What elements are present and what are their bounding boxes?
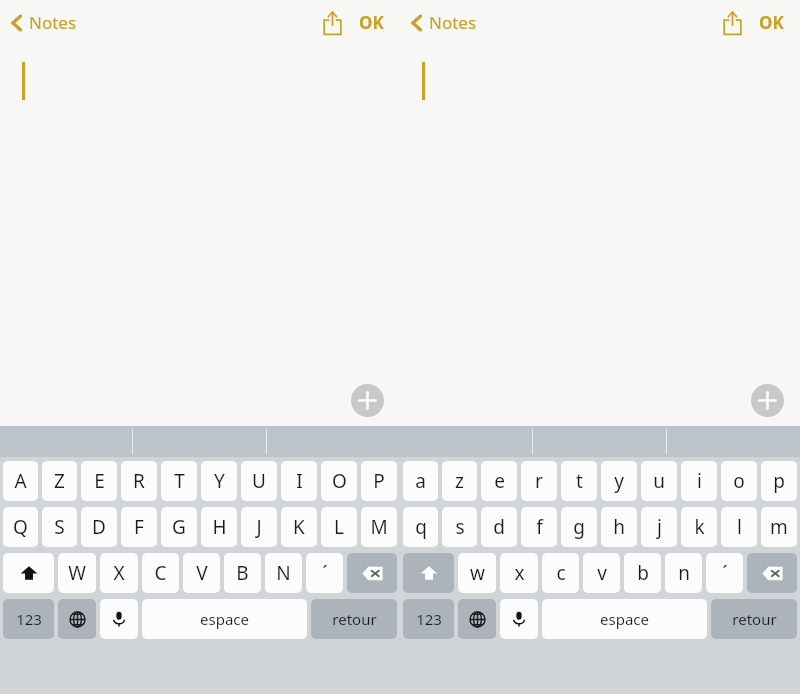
button[interactable]: z <box>442 461 477 501</box>
button[interactable]: D <box>81 507 117 547</box>
button[interactable]: A <box>3 461 38 501</box>
button[interactable]: Y <box>201 461 237 501</box>
button[interactable]: Add attachment <box>351 384 384 417</box>
button[interactable]: p <box>761 461 797 501</box>
button[interactable]: k <box>681 507 717 547</box>
button[interactable]: s <box>442 507 477 547</box>
button[interactable]: h <box>601 507 637 547</box>
button[interactable]: Dictation <box>100 599 138 639</box>
button[interactable]: X <box>100 553 138 593</box>
staticText: V <box>196 560 208 586</box>
button[interactable]: Notes <box>10 11 77 34</box>
button[interactable]: u <box>641 461 677 501</box>
button[interactable]: R <box>121 461 157 501</box>
button[interactable]: i <box>681 461 717 501</box>
button[interactable]: Share <box>315 6 349 40</box>
button[interactable]: Backspace <box>747 553 797 593</box>
button[interactable]: Add attachment <box>751 384 784 417</box>
button[interactable]: e <box>481 461 517 501</box>
button[interactable]: espace <box>542 599 707 639</box>
button[interactable]: L <box>321 507 357 547</box>
button[interactable]: Share <box>715 6 749 40</box>
staticText: retour <box>332 609 377 629</box>
button[interactable]: V <box>183 553 220 593</box>
button[interactable]: retour <box>711 599 797 639</box>
button[interactable]: S <box>42 507 77 547</box>
button[interactable]: Z <box>42 461 77 501</box>
staticText: E <box>94 468 105 494</box>
button[interactable]: y <box>601 461 637 501</box>
button[interactable]: Shift <box>403 553 454 593</box>
button[interactable]: ´ <box>706 553 743 593</box>
button[interactable]: Change keyboard <box>58 599 96 639</box>
button[interactable]: Shift <box>3 553 54 593</box>
button[interactable]: B <box>224 553 261 593</box>
button[interactable]: 123 <box>403 599 454 639</box>
button[interactable]: c <box>542 553 579 593</box>
button[interactable]: j <box>641 507 677 547</box>
button[interactable]: H <box>201 507 237 547</box>
staticText: espace <box>200 609 249 629</box>
button[interactable]: espace <box>142 599 307 639</box>
button[interactable]: OK <box>751 5 792 40</box>
button[interactable]: N <box>265 553 302 593</box>
staticText: S <box>54 514 65 540</box>
staticText: Notes <box>429 11 477 34</box>
button[interactable]: l <box>721 507 757 547</box>
staticText: k <box>694 514 705 540</box>
button[interactable]: Change keyboard <box>458 599 496 639</box>
button[interactable]: g <box>561 507 597 547</box>
staticText: o <box>733 468 745 494</box>
staticText: n <box>678 560 690 586</box>
button[interactable]: b <box>624 553 661 593</box>
staticText: f <box>536 514 543 540</box>
button[interactable]: q <box>403 507 438 547</box>
button[interactable]: retour <box>311 599 397 639</box>
button[interactable]: o <box>721 461 757 501</box>
button[interactable]: Backspace <box>347 553 397 593</box>
button[interactable]: Notes <box>410 11 477 34</box>
button[interactable]: f <box>521 507 557 547</box>
button[interactable]: ´ <box>306 553 343 593</box>
button[interactable]: P <box>361 461 397 501</box>
button[interactable]: a <box>403 461 438 501</box>
button[interactable]: K <box>281 507 317 547</box>
button[interactable]: d <box>481 507 517 547</box>
button[interactable]: OK <box>351 5 392 40</box>
button[interactable]: E <box>81 461 117 501</box>
staticText: D <box>92 514 106 540</box>
button[interactable]: v <box>583 553 620 593</box>
button[interactable]: F <box>121 507 157 547</box>
button[interactable]: n <box>665 553 702 593</box>
button[interactable]: M <box>361 507 397 547</box>
button[interactable]: W <box>58 553 96 593</box>
button[interactable]: r <box>521 461 557 501</box>
button[interactable]: x <box>500 553 538 593</box>
button[interactable]: O <box>321 461 357 501</box>
button[interactable]: 123 <box>3 599 54 639</box>
button[interactable]: G <box>161 507 197 547</box>
button[interactable]: T <box>161 461 197 501</box>
button[interactable]: Dictation <box>500 599 538 639</box>
staticText: R <box>133 468 145 494</box>
button[interactable]: J <box>241 507 277 547</box>
button[interactable]: m <box>761 507 797 547</box>
button[interactable]: t <box>561 461 597 501</box>
staticText: Y <box>214 468 225 494</box>
button[interactable]: U <box>241 461 277 501</box>
staticText: O <box>332 468 347 494</box>
button[interactable]: w <box>458 553 496 593</box>
button[interactable]: Q <box>3 507 38 547</box>
staticText: F <box>134 514 144 540</box>
button[interactable]: C <box>142 553 179 593</box>
button[interactable]: I <box>281 461 317 501</box>
staticText: U <box>252 468 266 494</box>
staticText: y <box>614 468 624 494</box>
staticText: 123 <box>16 609 42 629</box>
